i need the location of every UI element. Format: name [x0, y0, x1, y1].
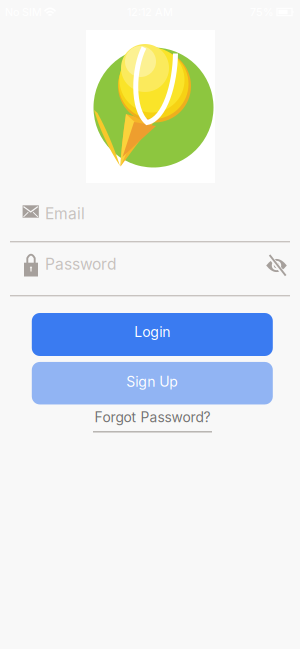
staticText: Forgot Password? [94, 409, 210, 426]
staticText: Email [45, 204, 85, 223]
staticText: Password [45, 255, 117, 273]
staticText: Sign Up [126, 373, 178, 390]
button[interactable]: Login [32, 313, 273, 356]
staticText: Login [134, 323, 170, 340]
button[interactable]: Sign Up [32, 362, 273, 404]
button[interactable]: Forgot Password? [67, 410, 237, 432]
button[interactable]: Show password [263, 254, 290, 277]
